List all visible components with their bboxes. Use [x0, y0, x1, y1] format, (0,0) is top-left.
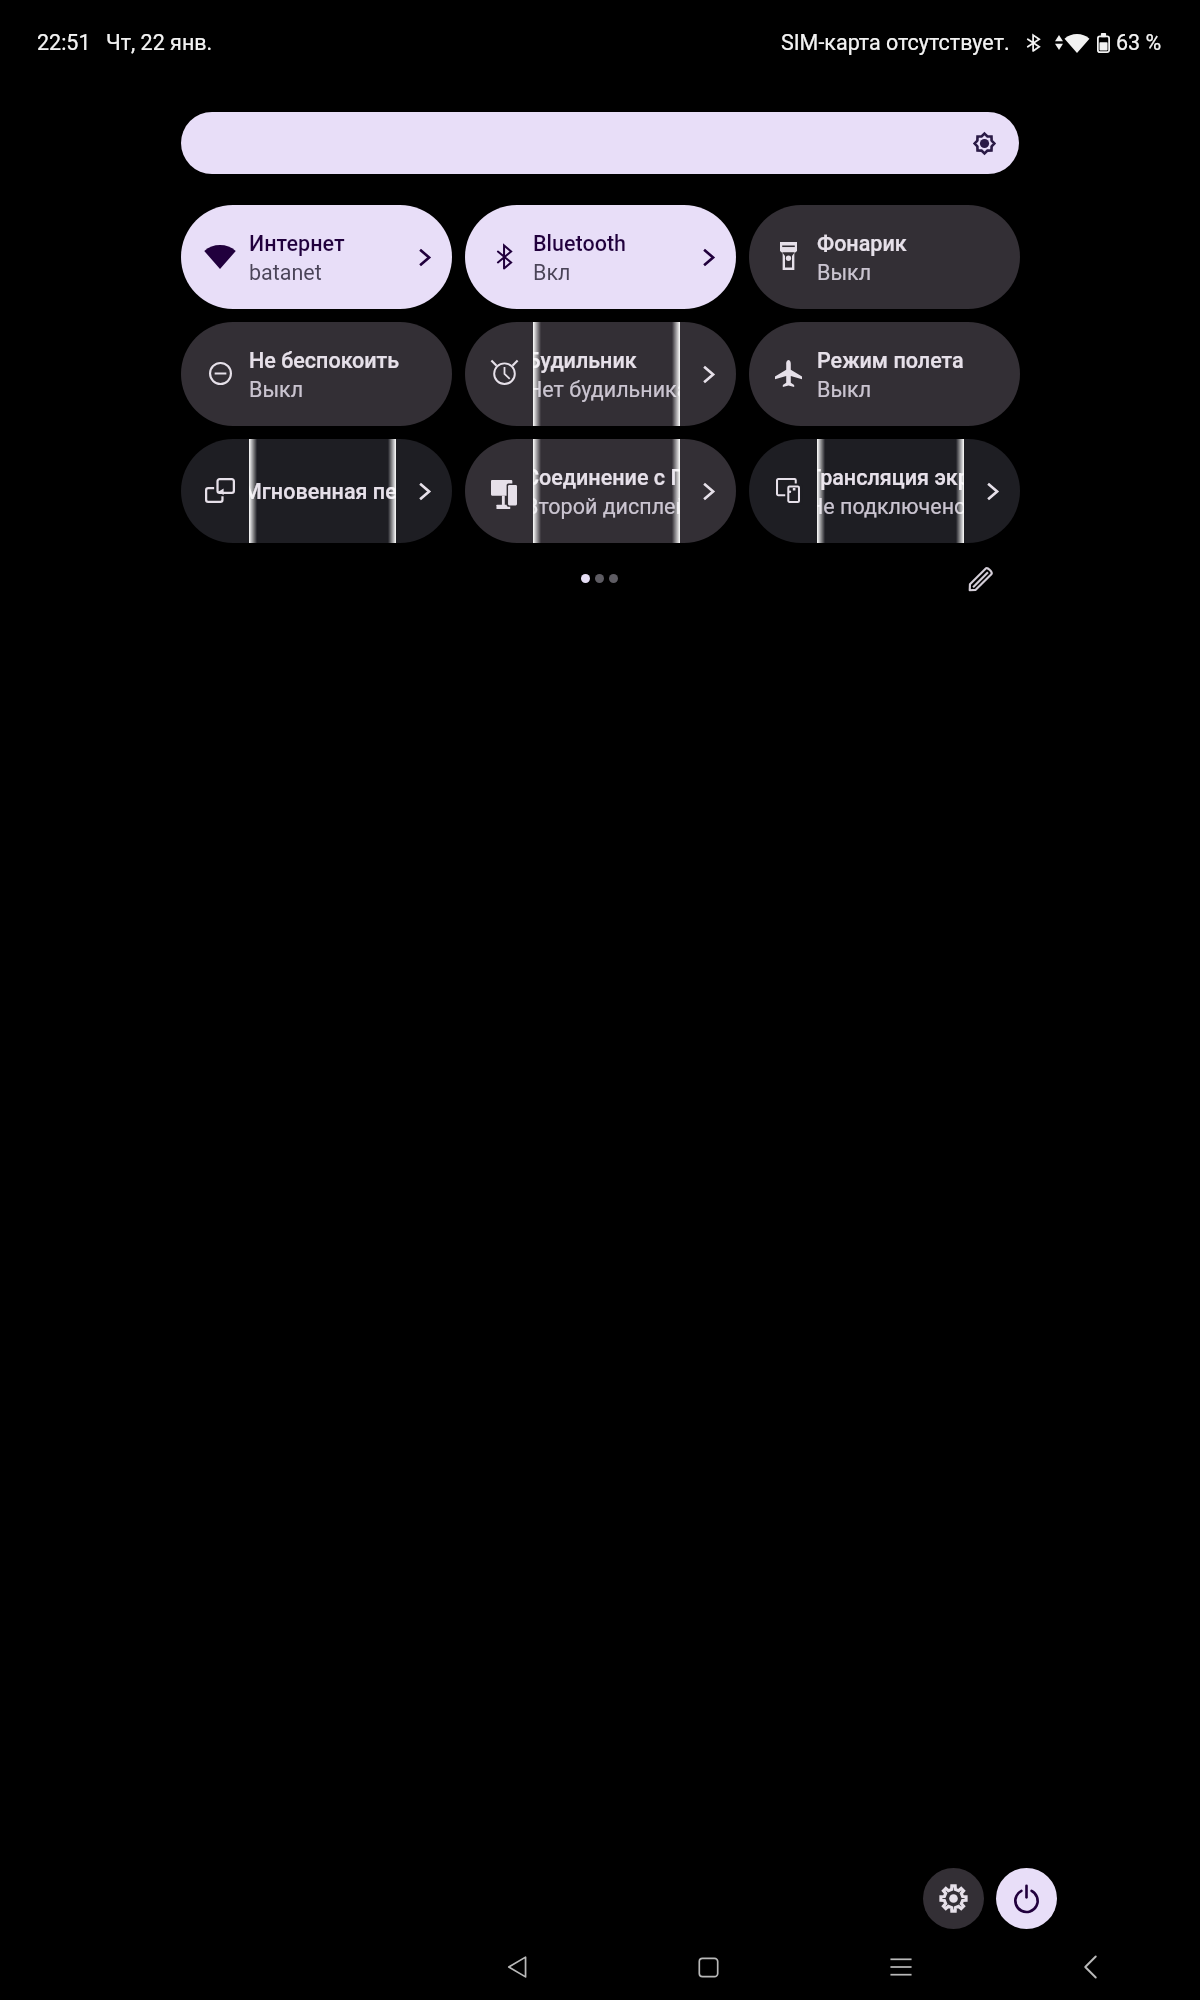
- staticText: 63 %: [1116, 30, 1162, 55]
- staticText: Второй дисплей: [533, 494, 672, 519]
- button[interactable]: Режим полета: [749, 322, 1020, 426]
- button[interactable]: Power: [996, 1868, 1057, 1929]
- staticText: Чт, 22 янв.: [106, 30, 213, 55]
- staticText: Трансляция экрана: [817, 465, 955, 490]
- staticText: Соединение с ПК: [533, 465, 672, 490]
- staticText: SIM-карта отсутствует.: [781, 30, 1010, 55]
- button[interactable]: Edit tiles: [958, 556, 1004, 602]
- staticText: Нет будильника: [533, 377, 674, 402]
- staticText: Выкл: [817, 260, 872, 285]
- staticText: Не беспокоить: [249, 348, 400, 373]
- staticText: Вкл: [533, 260, 571, 285]
- button[interactable]: Интернет: [181, 205, 452, 309]
- staticText: batanet: [249, 260, 322, 285]
- button[interactable]: Home: [685, 1944, 731, 1990]
- staticText: Выкл: [249, 377, 304, 402]
- button[interactable]: Мгновенная передача: [181, 439, 452, 543]
- staticText: Мгновенная передача: [249, 479, 390, 504]
- button[interactable]: Bluetooth: [465, 205, 736, 309]
- staticText: Bluetooth: [533, 231, 626, 256]
- button[interactable]: Recent apps: [878, 1944, 924, 1990]
- staticText: Интернет: [249, 231, 345, 256]
- button[interactable]: Будильник: [465, 322, 736, 426]
- button[interactable]: Settings: [923, 1868, 984, 1929]
- staticText: Режим полета: [817, 348, 964, 373]
- button[interactable]: Соединение с ПК: [465, 439, 736, 543]
- button[interactable]: Трансляция экрана: [749, 439, 1020, 543]
- button[interactable]: Фонарик: [749, 205, 1020, 309]
- staticText: Не подключено: [817, 494, 955, 519]
- staticText: Будильник: [533, 348, 637, 373]
- button[interactable]: Collapse panel: [1067, 1944, 1113, 1990]
- button[interactable]: Не беспокоить: [181, 322, 452, 426]
- button[interactable]: Brightness: [181, 112, 1019, 174]
- button[interactable]: Back: [494, 1944, 540, 1990]
- staticText: Фонарик: [817, 231, 907, 256]
- staticText: 22:51: [37, 30, 91, 55]
- staticText: Выкл: [817, 377, 872, 402]
